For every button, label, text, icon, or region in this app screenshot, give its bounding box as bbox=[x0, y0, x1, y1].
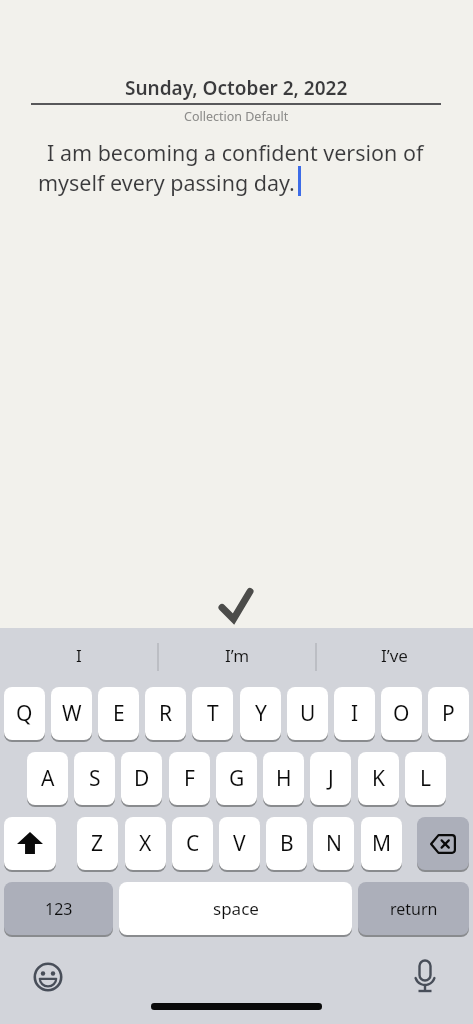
staticText: X bbox=[139, 829, 152, 858]
staticText: B bbox=[280, 829, 294, 858]
button[interactable]: K bbox=[358, 752, 399, 805]
button[interactable]: E bbox=[98, 687, 139, 740]
staticText: 123 bbox=[45, 898, 73, 920]
button[interactable]: O bbox=[381, 687, 422, 740]
staticText: I am becoming a confident version of bbox=[47, 138, 424, 167]
staticText: I’m bbox=[225, 644, 250, 667]
staticText: L bbox=[420, 764, 432, 793]
button[interactable]: A bbox=[27, 752, 68, 805]
staticText: Collection Default bbox=[184, 108, 289, 125]
button[interactable] bbox=[33, 962, 63, 992]
staticText: C bbox=[186, 829, 200, 858]
button[interactable]: I bbox=[334, 687, 375, 740]
staticText: A bbox=[41, 764, 55, 793]
button[interactable]: M bbox=[361, 817, 402, 870]
button[interactable]: V bbox=[219, 817, 260, 870]
button[interactable]: G bbox=[216, 752, 257, 805]
staticText: V bbox=[233, 829, 246, 858]
button[interactable]: return bbox=[358, 882, 469, 935]
button[interactable] bbox=[412, 959, 438, 995]
button[interactable] bbox=[4, 817, 56, 870]
button[interactable]: 123 bbox=[4, 882, 113, 935]
staticText: T bbox=[207, 699, 219, 728]
staticText: Y bbox=[255, 699, 267, 728]
staticText: F bbox=[184, 764, 195, 793]
button[interactable]: L bbox=[405, 752, 446, 805]
staticText: K bbox=[372, 764, 385, 793]
button[interactable]: U bbox=[287, 687, 328, 740]
button[interactable]: C bbox=[172, 817, 213, 870]
button[interactable]: I’m bbox=[158, 628, 316, 682]
button[interactable]: N bbox=[313, 817, 354, 870]
staticText: R bbox=[159, 699, 173, 728]
staticText: I’ve bbox=[381, 644, 408, 667]
staticText: M bbox=[372, 829, 392, 858]
button[interactable] bbox=[417, 817, 469, 870]
button[interactable]: H bbox=[263, 752, 304, 805]
button[interactable]: P bbox=[428, 687, 469, 740]
button[interactable]: space bbox=[119, 882, 352, 935]
button[interactable]: W bbox=[51, 687, 92, 740]
button[interactable]: J bbox=[310, 752, 351, 805]
staticText: E bbox=[113, 699, 125, 728]
button[interactable]: F bbox=[169, 752, 210, 805]
button[interactable]: Y bbox=[240, 687, 281, 740]
staticText: I bbox=[76, 644, 82, 667]
staticText: G bbox=[229, 764, 245, 793]
button[interactable]: I’ve bbox=[315, 628, 473, 682]
staticText: H bbox=[276, 764, 292, 793]
button[interactable]: Z bbox=[77, 817, 118, 870]
button[interactable]: S bbox=[74, 752, 115, 805]
staticText: N bbox=[326, 829, 342, 858]
button[interactable]: R bbox=[145, 687, 186, 740]
button[interactable]: Q bbox=[4, 687, 45, 740]
staticText: J bbox=[328, 764, 334, 793]
button[interactable] bbox=[218, 587, 254, 623]
button[interactable]: X bbox=[125, 817, 166, 870]
button[interactable]: B bbox=[266, 817, 307, 870]
staticText: D bbox=[134, 764, 150, 793]
staticText: O bbox=[393, 699, 410, 728]
button[interactable]: D bbox=[121, 752, 162, 805]
staticText: P bbox=[442, 699, 455, 728]
staticText: Z bbox=[91, 829, 104, 858]
staticText: space bbox=[213, 897, 259, 920]
staticText: myself every passing day. bbox=[38, 168, 295, 197]
staticText: S bbox=[89, 764, 101, 793]
staticText: Sunday, October 2, 2022 bbox=[125, 75, 348, 101]
button[interactable]: I bbox=[0, 628, 158, 682]
button[interactable]: T bbox=[192, 687, 233, 740]
staticText: I bbox=[351, 699, 359, 728]
staticText: Q bbox=[16, 699, 33, 728]
staticText: W bbox=[62, 699, 82, 728]
staticText: return bbox=[390, 898, 438, 920]
staticText: U bbox=[300, 699, 316, 728]
